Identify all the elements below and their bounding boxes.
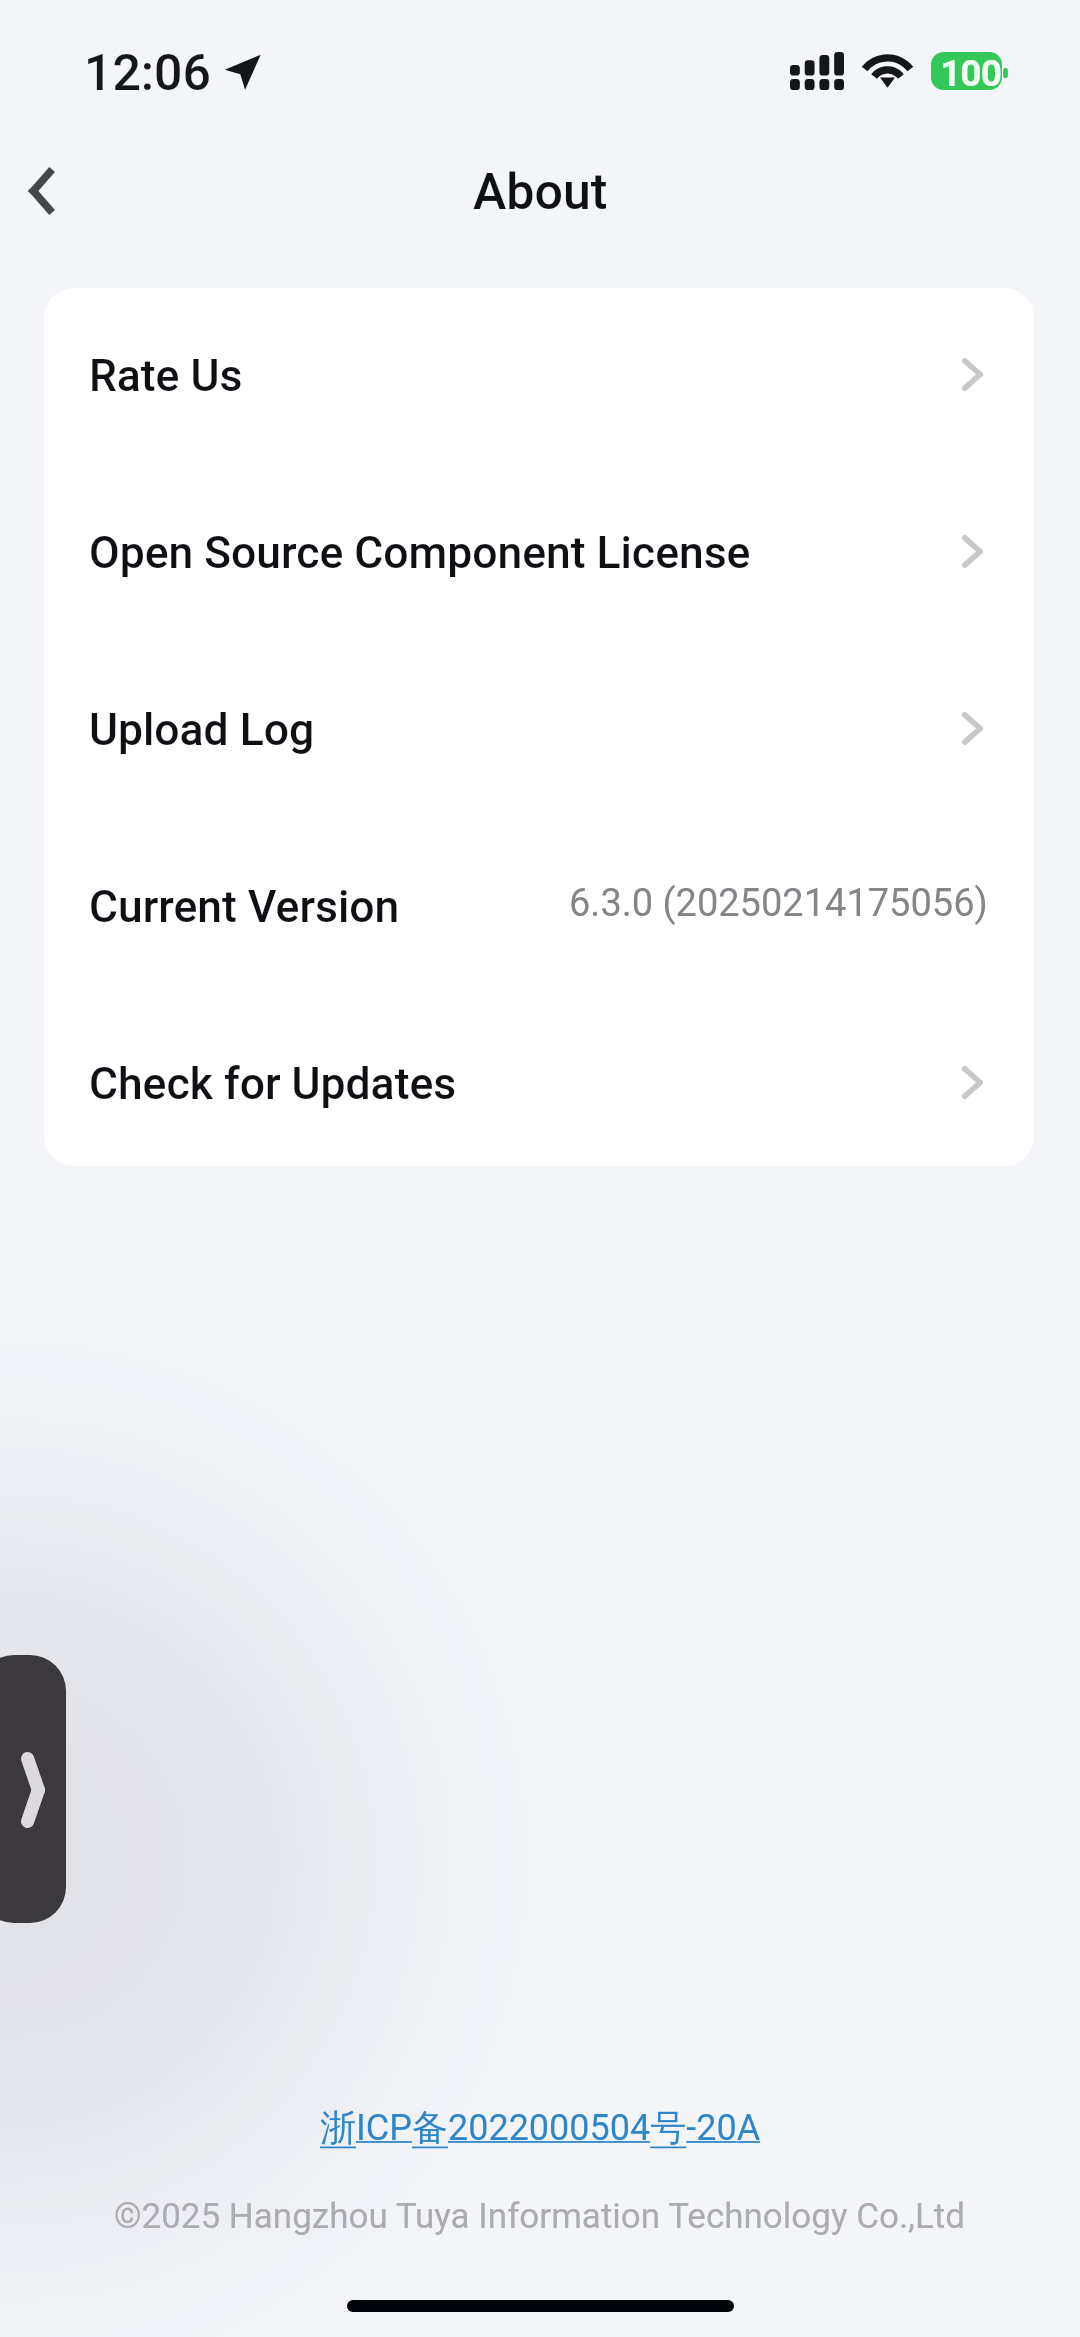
staticText: 12:06	[84, 44, 211, 103]
staticText: 6.3.0 (20250214175056)	[569, 881, 988, 926]
button[interactable]: Open Source Component License	[44, 486, 1034, 644]
button[interactable]: Open side panel	[0, 1655, 66, 1923]
button[interactable]: Rate Us	[44, 309, 1034, 467]
button[interactable]: Current Version	[44, 840, 1034, 998]
button[interactable]: Upload Log	[44, 663, 1034, 821]
button[interactable]: Back	[0, 143, 89, 239]
staticText: Check for Updates	[89, 1058, 457, 1110]
staticText: Open Source Component License	[89, 527, 751, 579]
staticText: Current Version	[89, 881, 400, 933]
staticText: Upload Log	[89, 704, 315, 756]
staticText: About	[473, 163, 608, 222]
staticText: ©2025 Hangzhou Tuya Information Technolo…	[114, 2196, 966, 2237]
staticText: Rate Us	[89, 350, 243, 402]
button[interactable]: Check for Updates	[44, 1017, 1034, 1166]
button[interactable]: 浙ICP备2022000504号-20A	[320, 2105, 761, 2150]
staticText: 100	[940, 52, 1001, 90]
